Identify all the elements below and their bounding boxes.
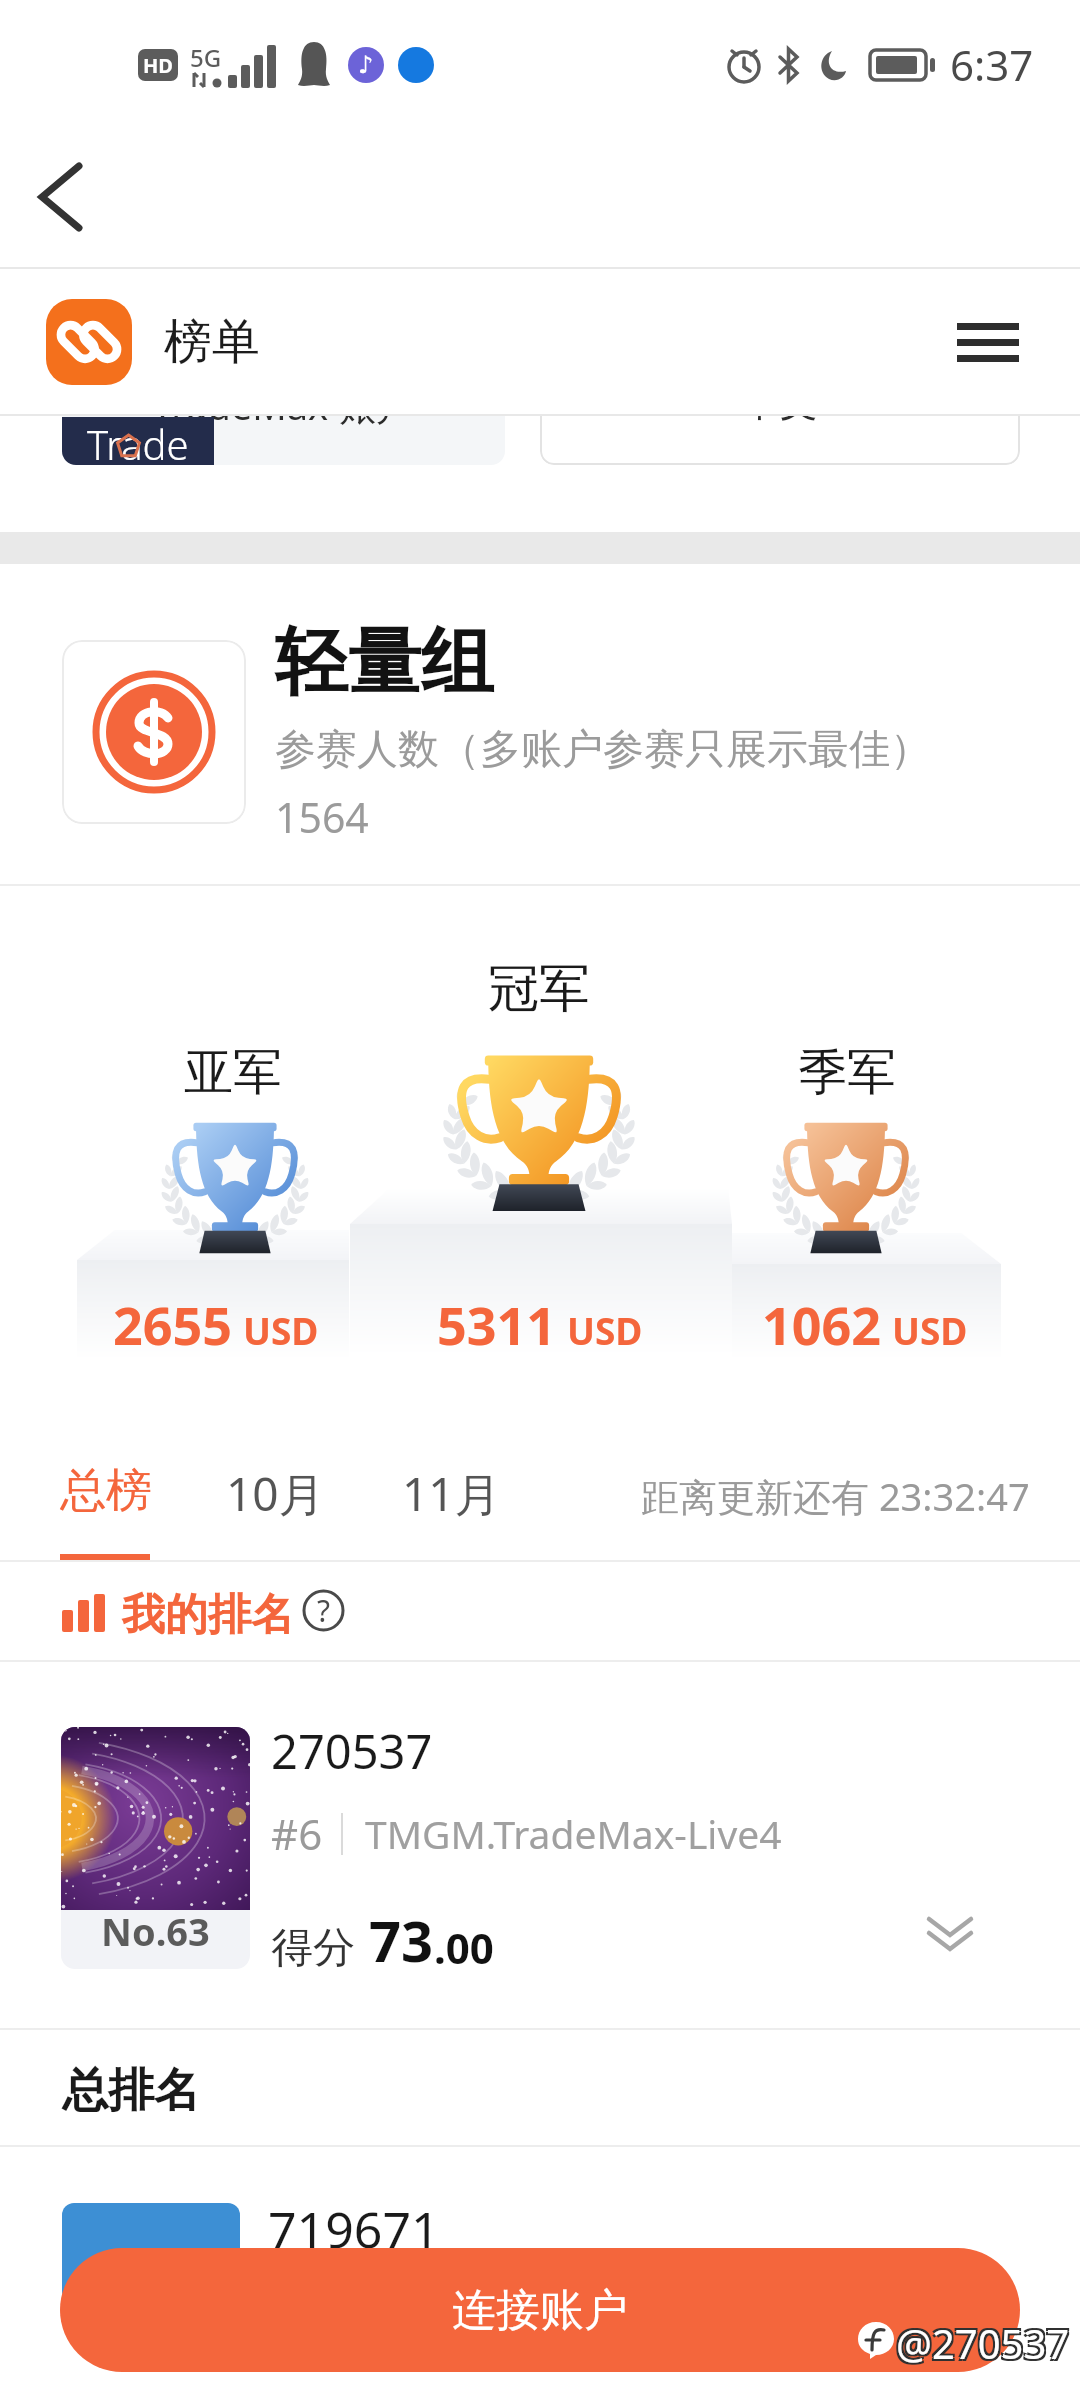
- staticText: 719671: [268, 2195, 440, 2263]
- staticText: 73: [369, 1902, 434, 1978]
- staticText: @270537: [896, 2316, 1070, 2370]
- staticText: 总排名: [62, 2062, 200, 2120]
- staticText: ♪: [358, 51, 374, 79]
- staticText: 我的排名: [122, 1588, 294, 1642]
- button[interactable]: 11月: [382, 1440, 501, 1561]
- button[interactable]: Back: [18, 155, 102, 239]
- button[interactable]: No.63: [0, 1662, 1080, 2032]
- staticText: 参赛人数（多账户参赛只展示最佳）: [275, 724, 931, 776]
- staticText: ?: [317, 1590, 331, 1631]
- staticText: 连接账户: [452, 2283, 628, 2338]
- staticText: 榜单: [164, 312, 260, 372]
- staticText: 冠军: [488, 957, 590, 1021]
- staticText: @270537: [894, 2318, 1068, 2372]
- staticText: 5311: [437, 1289, 556, 1360]
- button[interactable]: 中文: [540, 349, 1020, 465]
- staticText: 得分: [271, 1922, 355, 1975]
- staticText: 270537: [271, 1719, 433, 1783]
- staticText: 轻量组: [275, 617, 494, 709]
- staticText: 10月: [226, 1462, 325, 1525]
- staticText: 2655: [113, 1289, 232, 1360]
- staticText: 6:37: [950, 36, 1034, 93]
- staticText: .00: [434, 1919, 494, 1976]
- button[interactable]: Menu: [940, 294, 1036, 390]
- staticText: #6: [271, 1805, 323, 1862]
- staticText: USD: [567, 1305, 643, 1355]
- staticText: No.63: [101, 1905, 210, 1957]
- staticText: TMGM.TradeMax-Live4: [365, 1807, 782, 1860]
- staticText: 总榜: [60, 1462, 152, 1520]
- staticText: 距离更新还有 23:32:47: [641, 1470, 1030, 1522]
- staticText: USD: [892, 1305, 968, 1355]
- staticText: 亚军: [184, 1042, 282, 1104]
- button[interactable]: 总榜: [50, 1440, 152, 1561]
- button[interactable]: Help: [302, 1589, 345, 1632]
- staticText: @270537: [898, 2318, 1072, 2372]
- staticText: Trade: [87, 417, 189, 465]
- staticText: @270537: [894, 2314, 1068, 2368]
- button[interactable]: 轻量组: [0, 564, 1080, 885]
- staticText: USD: [243, 1305, 319, 1355]
- staticText: @270537: [898, 2314, 1072, 2368]
- button[interactable]: 连接账户: [60, 2248, 1020, 2372]
- staticText: 11月: [402, 1462, 501, 1525]
- staticText: 5G: [190, 41, 222, 74]
- staticText: 季军: [798, 1042, 896, 1104]
- staticText: 1564: [275, 789, 369, 845]
- button[interactable]: TradeMax 账户: [62, 349, 505, 465]
- staticText: HD: [143, 52, 173, 79]
- button[interactable]: 10月: [206, 1440, 325, 1561]
- staticText: 1062: [762, 1289, 881, 1360]
- button[interactable]: Expand: [900, 1884, 1000, 1984]
- button[interactable]: 总排名: [0, 2030, 1080, 2145]
- staticText: 中文: [742, 379, 818, 427]
- staticText: TradeMax 账户: [152, 379, 415, 431]
